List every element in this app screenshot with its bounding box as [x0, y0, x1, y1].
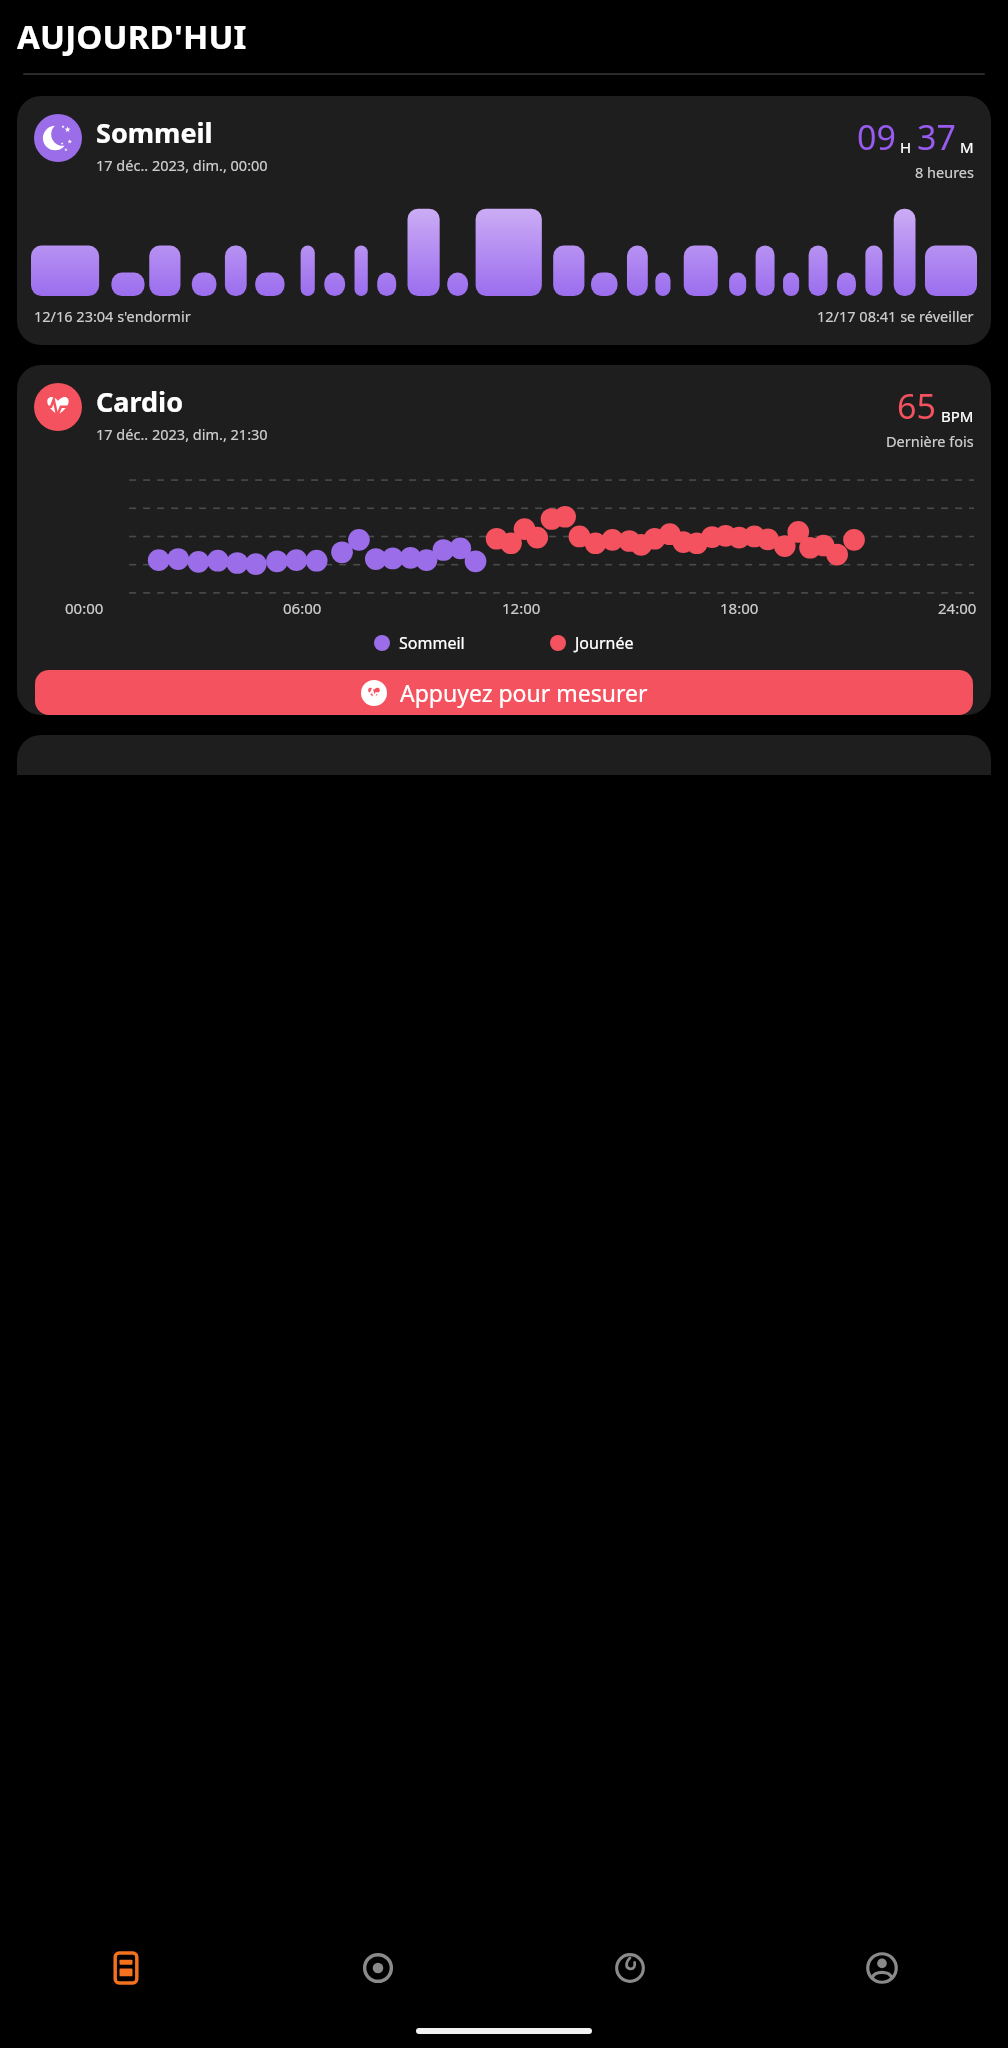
- button[interactable]: Profil: [756, 1922, 1008, 2014]
- staticText: 65: [897, 383, 936, 429]
- staticText: 12/16 23:04 s'endormir: [34, 306, 191, 326]
- staticText: 17 déc.. 2023, dim., 00:00: [96, 155, 268, 175]
- staticText: 12:00: [502, 598, 541, 618]
- staticText: Dernière fois: [886, 431, 974, 451]
- staticText: Sommeil: [96, 114, 213, 151]
- staticText: Appuyez pour mesurer: [400, 677, 648, 708]
- button[interactable]: Cardio: [17, 365, 991, 715]
- button[interactable]: Appuyez pour mesurer: [35, 670, 973, 715]
- staticText: Cardio: [96, 383, 184, 420]
- staticText: AUJOURD'HUI: [17, 14, 247, 59]
- staticText: 37: [917, 114, 956, 160]
- button[interactable]: Sommeil: [504, 1922, 756, 2014]
- staticText: Sommeil: [399, 632, 465, 654]
- staticText: 17 déc.. 2023, dim., 21:30: [96, 424, 268, 444]
- staticText: H: [900, 137, 912, 157]
- button[interactable]: Entraînement: [252, 1922, 504, 2014]
- button[interactable]: Aujourd'hui: [0, 1922, 252, 2014]
- staticText: 24:00: [938, 598, 977, 618]
- staticText: 8 heures: [915, 162, 974, 182]
- staticText: 09: [857, 114, 896, 160]
- staticText: 00:00: [65, 598, 104, 618]
- staticText: 18:00: [720, 598, 759, 618]
- staticText: Journée: [575, 632, 634, 654]
- staticText: 06:00: [283, 598, 322, 618]
- staticText: M: [960, 137, 974, 157]
- staticText: BPM: [941, 406, 974, 426]
- button[interactable]: Sommeil: [17, 96, 991, 345]
- staticText: 12/17 08:41 se réveiller: [817, 306, 974, 326]
